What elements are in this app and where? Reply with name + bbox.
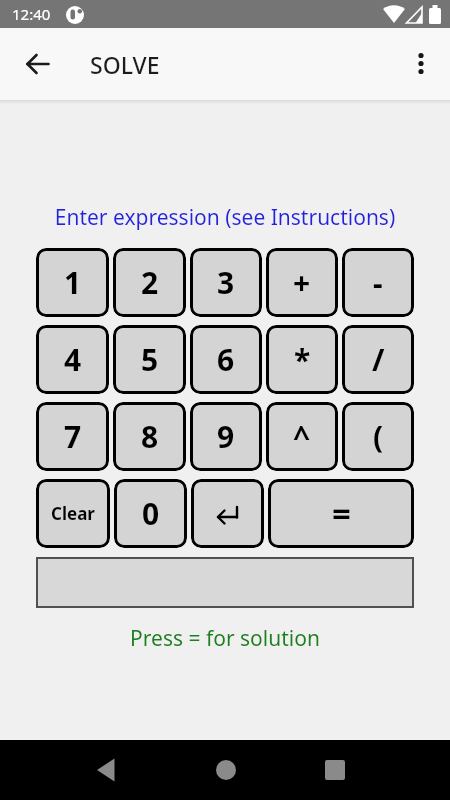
staticText: ^ (293, 416, 311, 457)
staticText: Clear (51, 502, 95, 525)
staticText: + (293, 262, 311, 303)
staticText: 7 (64, 416, 82, 457)
button[interactable]: 3 (190, 248, 262, 317)
staticText: 3 (217, 262, 235, 303)
button[interactable]: = (268, 479, 414, 548)
staticText: 12:40 (12, 4, 51, 24)
staticText: 5 (141, 339, 159, 380)
button[interactable]: 7 (36, 402, 109, 471)
button[interactable]: - (342, 248, 414, 317)
button[interactable]: / (342, 325, 414, 394)
button[interactable] (14, 40, 62, 88)
button[interactable] (36, 557, 414, 608)
button[interactable] (400, 43, 442, 85)
staticText: Press = for solution (0, 624, 450, 653)
staticText: ( (373, 416, 384, 457)
button[interactable] (191, 479, 264, 548)
button[interactable]: + (266, 248, 338, 317)
staticText: 9 (217, 416, 235, 457)
staticText: 8 (141, 416, 159, 457)
button[interactable]: 2 (113, 248, 186, 317)
staticText: - (373, 262, 383, 303)
staticText: Enter expression (see Instructions) (0, 203, 450, 232)
button[interactable] (72, 740, 144, 800)
button[interactable] (190, 740, 262, 800)
staticText: 0 (142, 493, 160, 534)
staticText: / (372, 339, 385, 380)
button[interactable]: ( (342, 402, 414, 471)
button[interactable] (299, 740, 371, 800)
button[interactable]: Clear (36, 479, 110, 548)
button[interactable]: * (266, 325, 338, 394)
staticText: SOLVE (90, 49, 160, 80)
staticText: * (294, 339, 311, 380)
button[interactable]: 6 (190, 325, 262, 394)
staticText: = (332, 491, 351, 536)
button[interactable]: 1 (36, 248, 109, 317)
button[interactable]: 9 (190, 402, 262, 471)
button[interactable]: 5 (113, 325, 186, 394)
button[interactable]: 4 (36, 325, 109, 394)
button[interactable]: 8 (113, 402, 186, 471)
button[interactable]: ^ (266, 402, 338, 471)
staticText: 6 (217, 339, 235, 380)
button[interactable]: 0 (114, 479, 187, 548)
staticText: 4 (64, 339, 82, 380)
staticText: 2 (141, 262, 159, 303)
staticText: 1 (64, 262, 82, 303)
